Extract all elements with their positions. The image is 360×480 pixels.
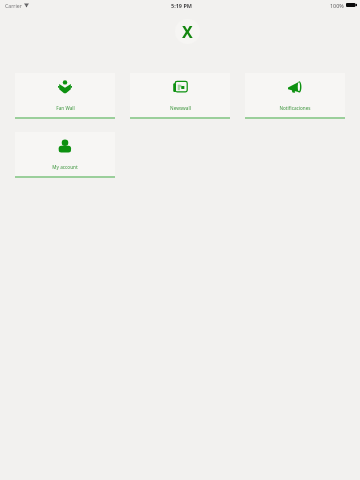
staticText: Notificaciones [279, 105, 311, 111]
button[interactable]: Fan Wall [15, 73, 115, 119]
staticText: My account [52, 164, 78, 170]
staticText: X [182, 21, 193, 43]
staticText: 100% [330, 2, 344, 9]
button[interactable]: Home [175, 19, 200, 44]
staticText: Fan Wall [56, 105, 75, 111]
staticText: Carrier [5, 2, 22, 9]
staticText: 5:19 PM [171, 2, 193, 9]
button[interactable]: My account [15, 132, 115, 178]
button[interactable]: Newswall [130, 73, 230, 119]
button[interactable]: Notificaciones [245, 73, 345, 119]
staticText: Newswall [170, 105, 191, 111]
